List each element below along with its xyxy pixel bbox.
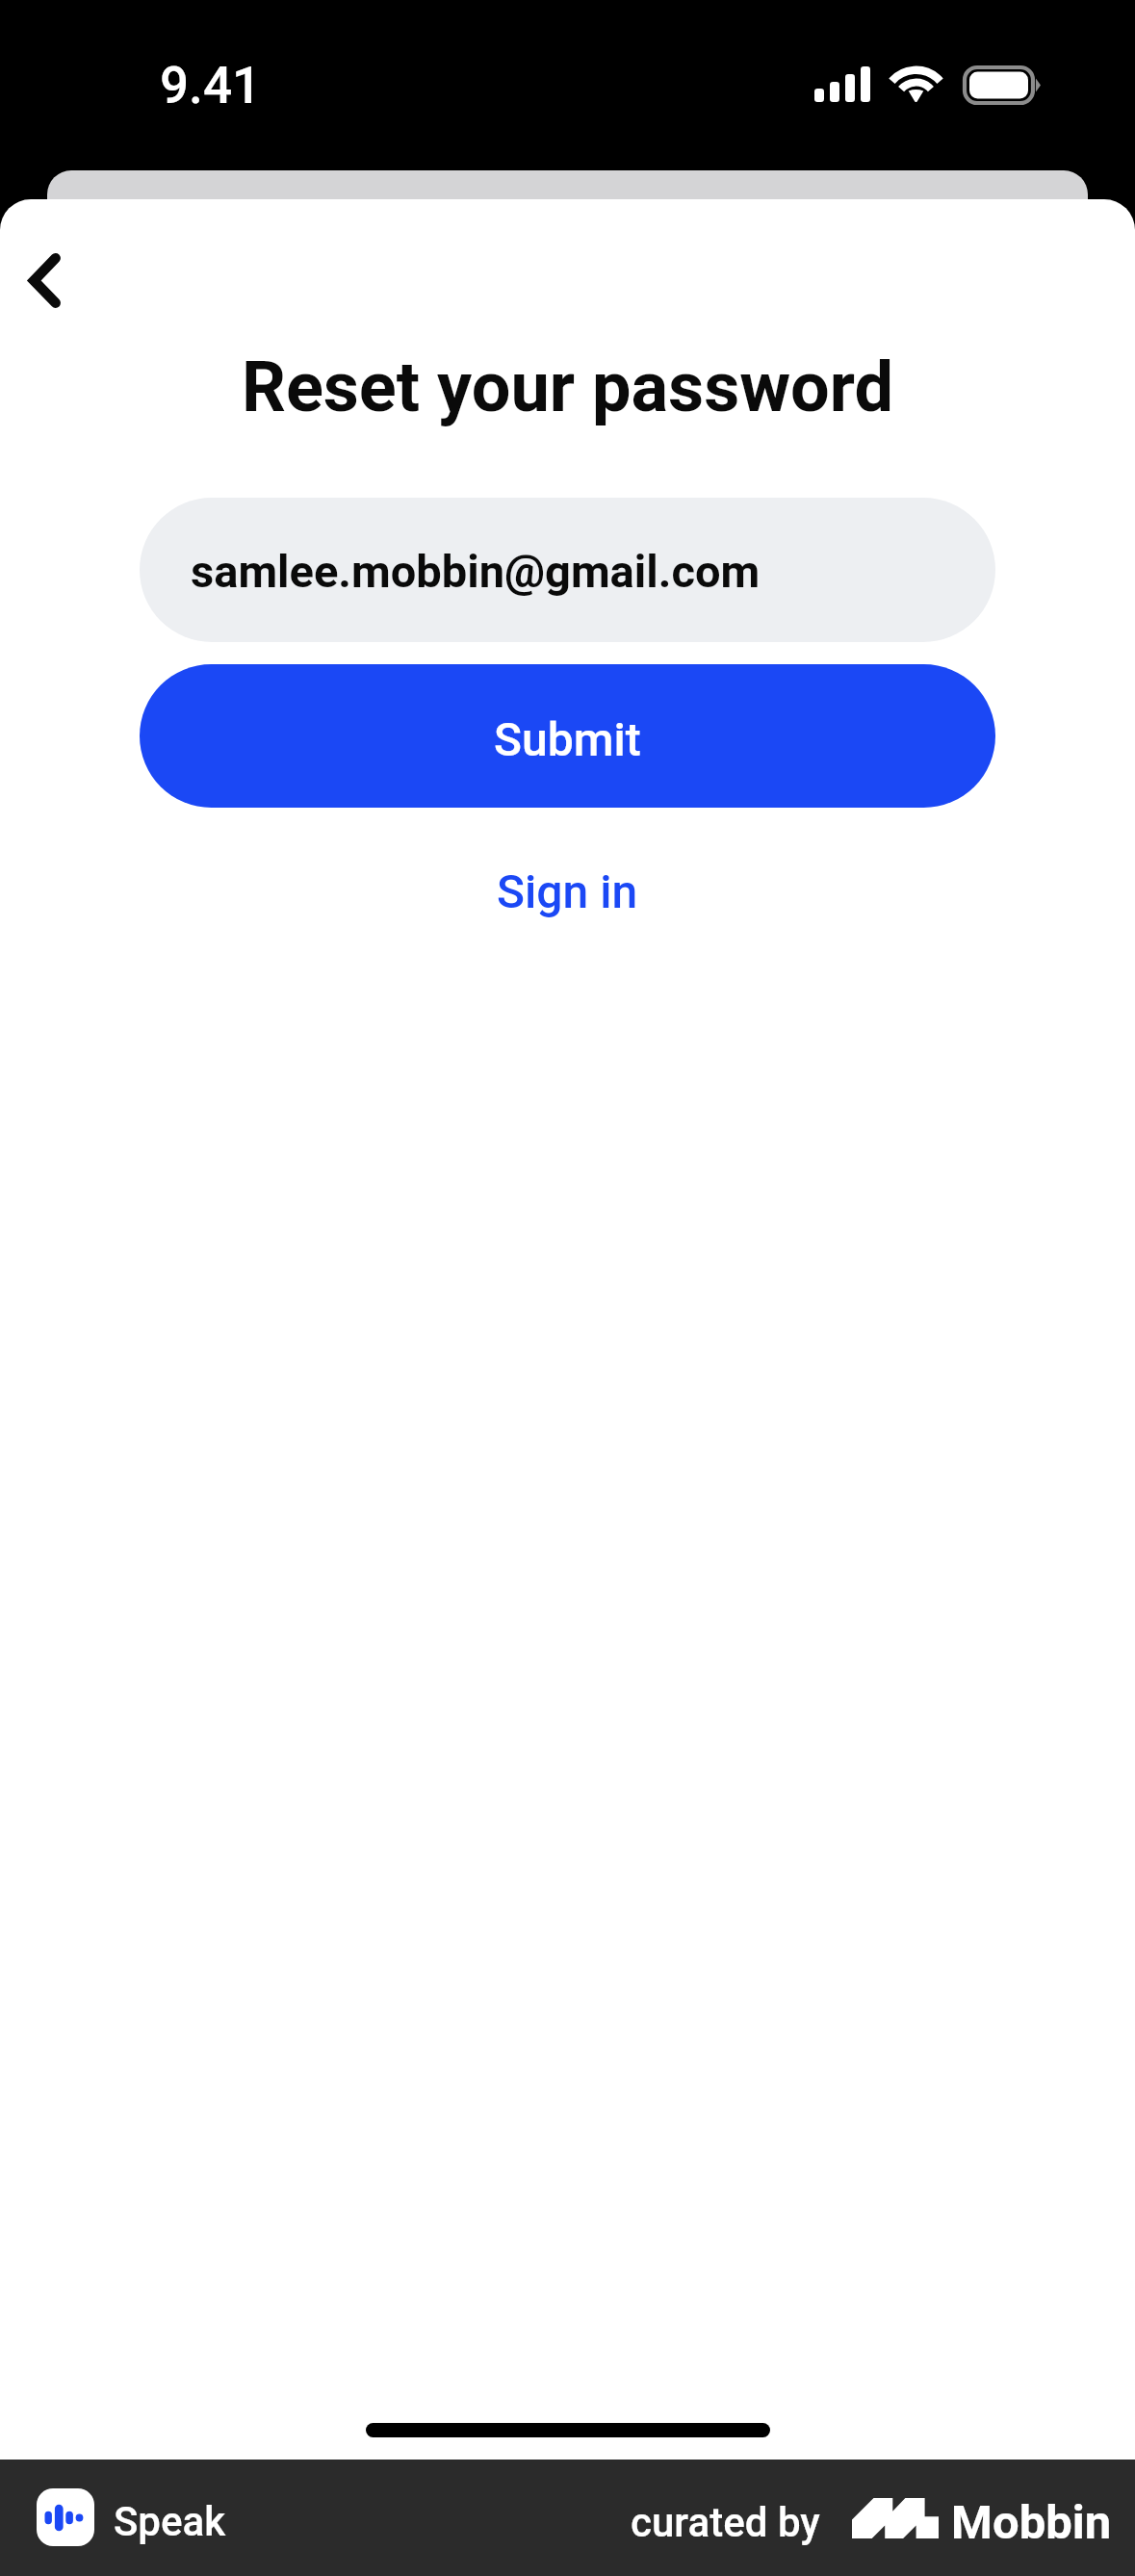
staticText: Speak (114, 2498, 226, 2545)
staticText: Mobbin (951, 2495, 1112, 2550)
staticText: Reset your password (0, 347, 1135, 427)
staticText: Sign in (497, 864, 638, 918)
button[interactable]: Sign in (0, 837, 1135, 945)
staticText: samlee.mobbin@gmail.com (191, 545, 761, 598)
button[interactable]: Back (4, 224, 90, 311)
button[interactable]: Speak app (37, 2488, 226, 2546)
button[interactable]: samlee.mobbin@gmail.com (140, 498, 995, 642)
staticText: Submit (494, 712, 641, 766)
other: Speak app (37, 2488, 94, 2546)
staticText: curated by (631, 2499, 820, 2546)
staticText: 9.41 (160, 56, 262, 116)
button[interactable]: Submit (140, 664, 995, 808)
